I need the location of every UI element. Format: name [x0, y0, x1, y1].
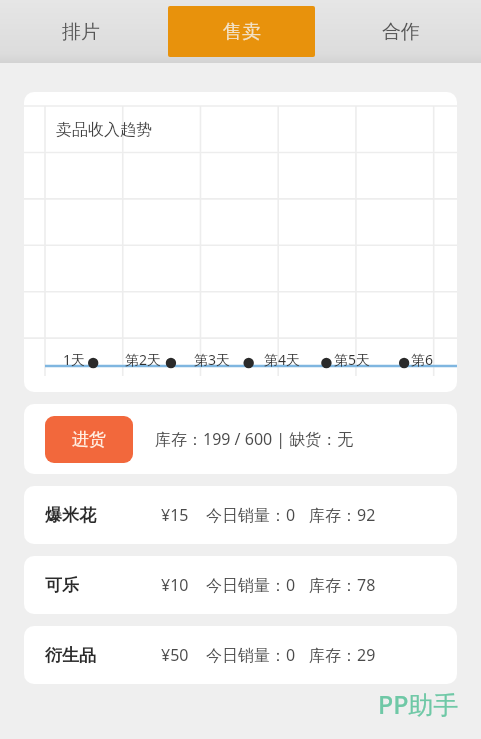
staticText: 第4天 [264, 350, 301, 369]
staticText: 第5天 [334, 350, 371, 369]
button[interactable]: 爆米花 [24, 486, 457, 544]
staticText: 今日销量：0 [206, 574, 296, 596]
staticText: 库存：92 [309, 504, 376, 526]
staticText: 今日销量：0 [206, 644, 296, 666]
button[interactable]: 售卖 [168, 6, 315, 57]
staticText: 第3天 [194, 350, 231, 369]
staticText: 第6 [411, 350, 434, 369]
button[interactable]: 排片 [0, 6, 161, 57]
button[interactable]: 卖品收入趋势 [24, 92, 457, 392]
staticText: 1天 [63, 350, 86, 369]
staticText: PP助手 [378, 687, 459, 721]
button[interactable]: 可乐 [24, 556, 457, 614]
staticText: 衍生品 [45, 645, 96, 666]
button[interactable]: 合作 [321, 6, 481, 57]
staticText: ¥15 [161, 504, 189, 526]
staticText: ¥50 [161, 644, 189, 666]
staticText: 第2天 [125, 350, 162, 369]
staticText: 可乐 [45, 575, 79, 596]
staticText: 合作 [382, 20, 420, 44]
staticText: 进货 [72, 429, 106, 450]
button[interactable]: 衍生品 [24, 626, 457, 684]
staticText: 爆米花 [45, 505, 96, 526]
staticText: 库存：78 [309, 574, 376, 596]
staticText: 今日销量：0 [206, 504, 296, 526]
staticText: 售卖 [223, 20, 261, 44]
staticText: 排片 [62, 20, 100, 44]
staticText: 卖品收入趋势 [56, 120, 152, 140]
staticText: ¥10 [161, 574, 189, 596]
staticText: 库存：29 [309, 644, 376, 666]
staticText: 库存：199 / 600 | 缺货：无 [155, 428, 354, 450]
button[interactable]: 进货 [45, 416, 133, 463]
button[interactable]: 进货 [24, 404, 457, 474]
